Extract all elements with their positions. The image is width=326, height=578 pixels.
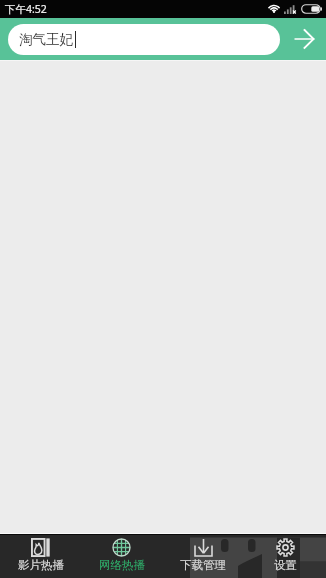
staticText: 设置	[274, 558, 297, 572]
button[interactable]: 设置	[244, 534, 326, 578]
staticText: 下载管理	[180, 558, 226, 572]
staticText: 下午4:52	[5, 2, 47, 16]
button[interactable]: 网络热播	[81, 534, 162, 578]
button[interactable]: Search	[287, 22, 321, 56]
button[interactable]: 下载管理	[162, 534, 244, 578]
staticText: 影片热播	[18, 558, 64, 572]
staticText: 网络热播	[99, 558, 145, 572]
button[interactable]: 淘气王妃	[8, 24, 280, 55]
staticText: 淘气王妃	[19, 31, 73, 48]
button[interactable]: 影片热播	[0, 534, 81, 578]
